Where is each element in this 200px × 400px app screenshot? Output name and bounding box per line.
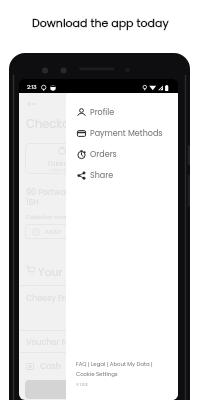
staticText: Collection time [26,213,67,221]
staticText: FAQ | Legal | About My Data | [76,360,153,368]
staticText: Place order [73,383,125,396]
staticText: Cheesy Fries [26,293,77,304]
staticText: Cash [40,361,61,372]
staticText: ASAP [45,228,62,236]
staticText: Share [90,170,114,181]
staticText: Profile [90,107,115,118]
button[interactable]: ASAP [25,224,173,239]
staticText: Checkout [26,116,82,132]
button[interactable]: Back [27,100,37,108]
button[interactable]: Share [77,165,178,186]
button[interactable]: Payment Methods [77,123,178,144]
staticText: 1SH [26,197,39,208]
button[interactable]: Takeaway [25,143,173,174]
staticText: V 1.11.3 [76,382,88,388]
staticText: Takeaway [47,159,83,169]
button[interactable]: Place order [25,380,173,399]
staticText: Your order [38,264,96,279]
staticText: Voucher Name [26,337,86,348]
button[interactable]: Orders [77,144,178,165]
staticText: Payment Methods [90,128,163,139]
staticText: Download the app today [32,15,169,30]
button[interactable]: Cookie Settings [76,370,118,378]
staticText: 90 Portway, [26,187,72,198]
staticText: 2:13 [27,83,37,91]
staticText: order details [49,167,78,173]
button[interactable]: Profile [77,102,178,123]
staticText: Orders [90,149,117,160]
